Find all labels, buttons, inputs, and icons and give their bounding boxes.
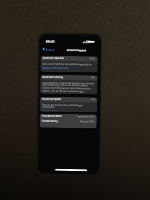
button[interactable]: Anzahl der Zyklen	[40, 97, 97, 102]
button[interactable]: Deine Batterie unterstützt derzeit die n…	[40, 80, 97, 94]
staticText: Dies ist ein Maß für die Batteriekapazit…	[43, 62, 96, 65]
staticText: September 2023	[77, 115, 95, 118]
staticText: Maximale Kapazität	[43, 57, 65, 60]
button[interactable]: Dies ist die Anzahl der vollständigen La…	[40, 102, 97, 112]
staticText: Produktionsdatum	[42, 115, 63, 118]
button[interactable]: Back	[42, 47, 56, 52]
staticText: 09:41	[46, 39, 55, 44]
other: Back	[43, 48, 45, 51]
staticText: 174	[91, 98, 95, 101]
staticText: Dies ist die Anzahl der vollständigen La…	[42, 103, 95, 109]
staticText: Anzahl der Zyklen	[42, 98, 62, 101]
staticText: Weitere Infos …	[42, 109, 60, 111]
staticText: Oktober 2023	[80, 120, 95, 123]
staticText: 92 %	[90, 57, 96, 60]
button[interactable]: Dies ist ein Maß für die Batteriekapazit…	[40, 61, 98, 72]
button[interactable]: Maximale Kapazität	[41, 56, 98, 61]
staticText: Batteriezustand	[67, 48, 87, 51]
button[interactable]: Maximale Leistung	[40, 75, 97, 80]
staticText: Batterie	[46, 48, 55, 51]
button[interactable]: Erstbenutzung	[40, 119, 97, 124]
staticText: Deine Batterie unterstützt derzeit die n…	[42, 81, 95, 93]
staticText: OK	[91, 76, 95, 79]
staticText: Maximale Leistung	[42, 76, 63, 79]
staticText: Weitere Informationen …	[42, 66, 71, 69]
staticText: Erstbenutzung	[42, 120, 58, 123]
button[interactable]: Produktionsdatum	[40, 114, 97, 119]
